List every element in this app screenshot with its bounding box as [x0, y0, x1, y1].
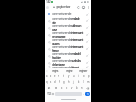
button[interactable]: h [66, 79, 71, 85]
staticText: v [71, 86, 73, 90]
button[interactable]: m [86, 79, 91, 85]
staticText: r [58, 74, 60, 78]
staticText: t [63, 74, 64, 78]
staticText: comment se rendre sur les iles [52, 59, 81, 63]
button[interactable]: comment se rendre utile a son [45, 24, 91, 31]
staticText: b [76, 86, 78, 90]
staticText: u [73, 74, 75, 78]
button[interactable]: w [53, 85, 59, 91]
button[interactable]: x [59, 85, 64, 91]
button[interactable]: Insert suggestion [86, 54, 89, 57]
staticText: pays [52, 28, 57, 31]
button[interactable]: u [71, 73, 76, 79]
staticText: c [66, 86, 68, 90]
button[interactable]: Tabs [82, 6, 85, 9]
button[interactable]: Previous suggestions [46, 70, 48, 72]
button[interactable]: engineer [76, 68, 90, 73]
button[interactable]: Account [46, 6, 49, 9]
button[interactable]: o [81, 73, 86, 79]
button[interactable]: comment se rendre sur les iles [45, 59, 91, 66]
button[interactable]: Insert suggestion [86, 33, 89, 36]
button[interactable]: r [57, 73, 61, 79]
staticText: h [68, 80, 70, 84]
button[interactable]: n [79, 85, 84, 91]
staticText: l [83, 80, 84, 84]
staticText: comment se rendre [52, 12, 72, 16]
button[interactable]: Insert suggestion [86, 13, 89, 16]
button[interactable]: t [61, 73, 66, 79]
button[interactable]: Insert suggestion [86, 26, 89, 29]
staticText: f [59, 80, 60, 84]
staticText: vite [52, 21, 56, 24]
button[interactable]: comment se rendre [45, 11, 91, 17]
button[interactable]: f [57, 79, 61, 85]
button[interactable]: engine [62, 68, 76, 73]
staticText: de bretagne [52, 63, 65, 66]
staticText: comment se rendre interessant [52, 31, 83, 35]
button[interactable]: Insert suggestion [86, 19, 89, 22]
staticText: comment se rendre malade il [52, 52, 81, 56]
button[interactable]: b [74, 85, 79, 91]
button[interactable]: ?123 [46, 91, 51, 97]
button[interactable]: l [81, 79, 86, 85]
button[interactable]: i [76, 73, 81, 79]
staticText: p [88, 74, 90, 78]
staticText: e [54, 74, 56, 78]
staticText: france [52, 49, 59, 52]
button[interactable]: Shift [45, 85, 53, 91]
staticText: k [78, 80, 80, 84]
staticText: comment se rendre utile a son [52, 24, 82, 28]
button[interactable]: j [71, 79, 76, 85]
staticText: faut bien [52, 56, 61, 59]
button[interactable]: a [45, 73, 49, 79]
button[interactable]: Search [85, 92, 90, 96]
staticText: comment se rendre fainent [52, 66, 79, 68]
staticText: x [61, 86, 63, 90]
staticText: o [83, 74, 85, 78]
button[interactable]: Insert suggestion [86, 40, 89, 43]
button[interactable]: k [76, 79, 81, 85]
staticText: w [55, 86, 58, 90]
button[interactable]: d [53, 79, 57, 85]
button[interactable]: v [69, 85, 74, 91]
button[interactable]: Emoji [51, 91, 55, 97]
button[interactable]: comment se rendre interessant [45, 31, 91, 38]
button[interactable]: y [66, 73, 71, 79]
button[interactable]: Insert suggestion [86, 47, 89, 50]
staticText: g [63, 80, 65, 84]
button[interactable]: More options [87, 6, 90, 9]
button[interactable]: Reload [77, 6, 80, 9]
staticText: y [68, 74, 70, 78]
button[interactable]: comment se rendre interessant en [45, 45, 91, 52]
button[interactable]: comment se rendre interessant [45, 38, 91, 45]
button[interactable]: . [82, 91, 85, 97]
staticText: n [81, 86, 83, 90]
button[interactable]: engins [48, 68, 62, 73]
button[interactable]: Insert suggestion [86, 66, 89, 68]
staticText: engins [52, 69, 58, 73]
staticText: 14:52 [46, 0, 51, 4]
staticText: engineer [79, 69, 87, 73]
staticText: m [87, 80, 90, 84]
staticText: . [83, 92, 84, 96]
staticText: j [73, 80, 74, 84]
button[interactable]: s [49, 79, 53, 85]
button[interactable]: c [64, 85, 69, 91]
button[interactable]: g [61, 79, 66, 85]
staticText: comment se rendre interessant en [52, 45, 85, 49]
staticText: q [46, 80, 48, 84]
staticText: s [50, 80, 52, 84]
staticText: d [54, 80, 56, 84]
button[interactable]: comment se rendre malade [45, 17, 91, 24]
staticText: a [46, 74, 48, 78]
button[interactable]: Backspace [84, 85, 91, 91]
button[interactable]: Insert suggestion [86, 61, 89, 64]
staticText: i [78, 74, 79, 78]
button[interactable]: comment se rendre malade il [45, 52, 91, 59]
button[interactable]: p [86, 73, 91, 79]
button[interactable]: comment se rendre fainent [45, 66, 91, 68]
button[interactable]: z [49, 73, 53, 79]
button[interactable]: q [45, 79, 49, 85]
button[interactable]: e [53, 73, 57, 79]
